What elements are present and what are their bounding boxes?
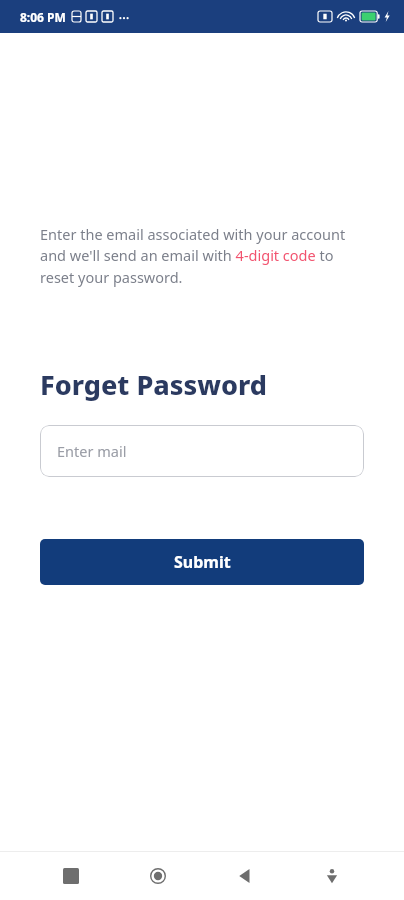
button[interactable]: Back <box>221 852 269 900</box>
button[interactable]: Submit <box>40 539 364 585</box>
staticText: Enter the email associated with your acc… <box>40 224 364 288</box>
staticText: Enter mail <box>57 441 127 461</box>
button[interactable]: Hide keyboard <box>308 852 356 900</box>
staticText: Submit <box>174 551 231 573</box>
button[interactable]: Home <box>134 852 182 900</box>
staticText: Forget Password <box>40 366 268 403</box>
button[interactable]: Recents <box>47 852 95 900</box>
staticText: 8:06 PM <box>20 9 66 25</box>
button[interactable]: Enter mail <box>40 425 364 477</box>
